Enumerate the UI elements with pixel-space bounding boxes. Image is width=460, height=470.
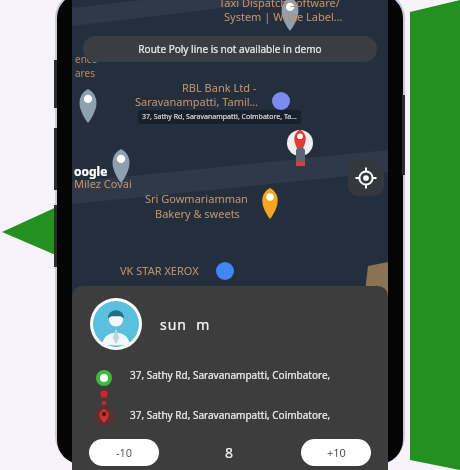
staticText: +10 [327, 445, 346, 460]
staticText: 37, Sathy Rd, Saravanampatti, Coimbatore… [130, 408, 331, 422]
button[interactable]: -10 [89, 439, 159, 466]
staticText: 37, Sathy Rd, Saravanampatti, Coimbatore… [130, 368, 331, 382]
button[interactable]: +10 [301, 439, 371, 466]
staticText: sun m [160, 315, 211, 334]
staticText: Saravanampatti, Tamil… [135, 94, 259, 109]
staticText: Sri Gowmariamman [145, 191, 248, 206]
staticText: 8 [225, 443, 234, 462]
staticText: 37, Sathy Rd, Saravanampatti, Coimbatore… [142, 112, 297, 122]
button[interactable]: My location [348, 160, 384, 196]
staticText: Route Poly line is not available in demo [138, 42, 322, 56]
staticText: Bakery & sweets [155, 206, 240, 221]
staticText: System | White Label… [224, 9, 343, 24]
staticText: oogle [74, 163, 108, 179]
staticText: VK STAR XEROX [120, 263, 199, 278]
button[interactable]: sun m [90, 298, 388, 350]
staticText: RBL Bank Ltd - [182, 80, 257, 95]
staticText: Taxi Dispatch Software/ [219, 0, 340, 10]
staticText: Milez Covai [74, 176, 132, 191]
staticText: -10 [116, 445, 133, 460]
staticText: ence [75, 52, 98, 66]
button[interactable]: 37, Sathy Rd, Saravanampatti, Coimbatore… [72, 368, 388, 428]
staticText: ares [75, 66, 95, 80]
